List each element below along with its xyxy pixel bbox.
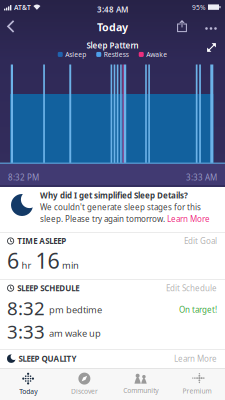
- staticText: Edit Goal: [184, 236, 217, 246]
- staticText: Today: [19, 387, 37, 396]
- staticText: Why did I get simplified Sleep Details?: [40, 190, 188, 201]
- staticText: SLEEP SCHEDULE: [17, 283, 79, 293]
- staticText: 3:48 AM: [97, 4, 128, 15]
- staticText: Discover: [71, 387, 98, 396]
- staticText: am wake up: [49, 327, 101, 339]
- staticText: TIME ASLEEP: [17, 236, 66, 246]
- staticText: 6: [7, 246, 19, 275]
- button[interactable]: Today: [0, 372, 56, 396]
- staticText: pm bedtime: [49, 303, 102, 316]
- button[interactable]: Back: [0, 0, 15, 33]
- button[interactable]: Community: [112, 373, 169, 395]
- button[interactable]: Edit Goal: [184, 236, 217, 246]
- staticText: 8:32: [7, 296, 45, 320]
- staticText: 3:33 AM: [186, 172, 217, 183]
- staticText: Restless: [104, 50, 129, 59]
- staticText: Community: [123, 386, 158, 395]
- staticText: sleep. Please try again tomorrow.: [40, 214, 167, 224]
- staticText: We couldn't generate sleep stages for th…: [40, 202, 201, 212]
- staticText: 3:33: [7, 319, 45, 344]
- button[interactable]: Premium: [169, 373, 225, 395]
- button[interactable]: Learn More: [167, 214, 210, 224]
- staticText: Edit Schedule: [166, 283, 217, 293]
- button[interactable]: Expand chart: [206, 42, 225, 53]
- staticText: hr: [21, 259, 31, 271]
- staticText: Sleep Pattern: [86, 40, 138, 51]
- button[interactable]: Discover: [56, 372, 112, 396]
- staticText: AT&T: [14, 3, 31, 12]
- staticText: Awake: [146, 50, 167, 59]
- staticText: SLEEP QUALITY: [18, 353, 76, 364]
- staticText: Asleep: [65, 50, 86, 59]
- staticText: Today: [97, 20, 128, 34]
- button[interactable]: More: [195, 3, 225, 30]
- button[interactable]: Share: [177, 1, 187, 32]
- staticText: 95%: [192, 3, 206, 12]
- staticText: Learn More: [167, 214, 210, 224]
- staticText: Premium: [182, 387, 211, 395]
- staticText: 8:32 PM: [8, 172, 39, 183]
- button[interactable]: Edit Schedule: [166, 283, 217, 293]
- staticText: On target!: [179, 304, 217, 315]
- staticText: Learn More: [174, 353, 217, 364]
- staticText: 16: [35, 246, 59, 275]
- button[interactable]: SLEEP QUALITY: [0, 350, 225, 367]
- staticText: min: [62, 259, 79, 271]
